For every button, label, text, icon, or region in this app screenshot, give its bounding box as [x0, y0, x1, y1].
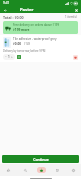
staticText: Continue	[33, 157, 49, 162]
staticText: Tile adhesive - waterproof grey	[13, 37, 57, 41]
staticText: ₹199 more	[13, 28, 30, 32]
button[interactable]: Free delivery on orders above ₹199	[3, 21, 78, 34]
button[interactable]: Back	[2, 7, 8, 13]
button[interactable]: −	[3, 54, 15, 60]
button[interactable]: Scan code	[73, 7, 79, 13]
button[interactable]: Orders	[49, 164, 65, 176]
button[interactable]: Remove item	[73, 55, 78, 60]
button[interactable]: 1 item(s)	[64, 14, 78, 20]
staticText: Total : ₹0.00	[3, 15, 24, 20]
staticText: 1 item(s)	[65, 15, 77, 19]
staticText: ₹149	[24, 42, 30, 46]
staticText: Paster	[20, 7, 34, 13]
staticText: ₹0.00	[13, 42, 22, 46]
staticText: Free delivery on orders above ₹199	[13, 23, 59, 27]
button[interactable]: Cart	[33, 164, 49, 176]
button[interactable]: Continue	[2, 155, 79, 163]
button[interactable]: Home	[0, 164, 17, 176]
button[interactable]: Veg	[17, 55, 21, 59]
staticText: Delivery by tomorrow, before 9 PM	[3, 49, 46, 53]
button[interactable]: Account	[65, 164, 81, 176]
staticText: −	[5, 55, 7, 59]
button[interactable]: Tile adhesive - waterproof grey	[0, 35, 81, 62]
staticText: +	[11, 55, 13, 59]
button[interactable]: Search	[17, 164, 33, 176]
staticText: 9:41	[3, 1, 10, 5]
staticText: 1	[8, 55, 10, 59]
